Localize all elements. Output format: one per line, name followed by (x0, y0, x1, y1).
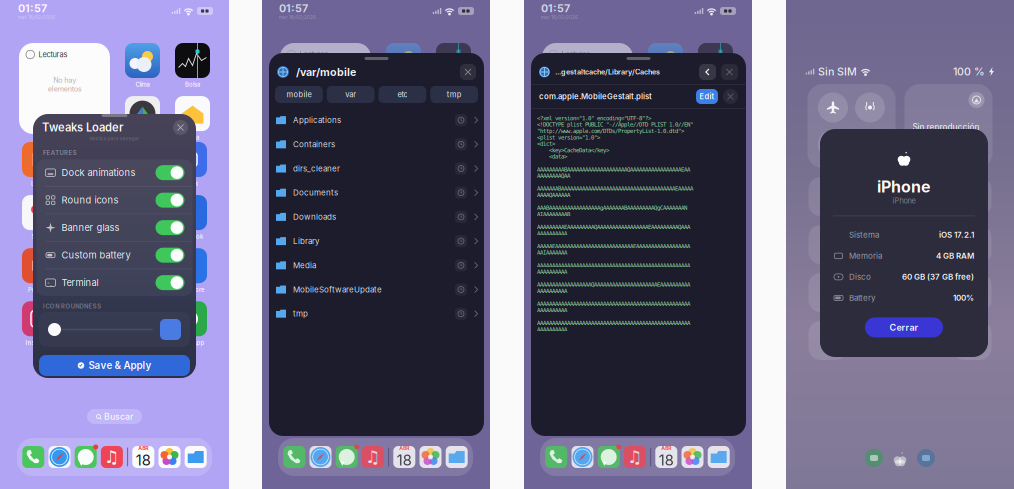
button[interactable]: Documents (269, 181, 484, 205)
button[interactable]: Toggle (818, 92, 848, 122)
button[interactable]: App (624, 446, 646, 468)
button[interactable]: App (158, 446, 180, 468)
button[interactable]: App (22, 446, 44, 468)
button[interactable]: ♥ (22, 195, 57, 240)
button[interactable]: Pruebas (22, 248, 57, 293)
button[interactable]: Custom battery (36, 242, 192, 268)
button[interactable]: App (48, 446, 70, 468)
button[interactable]: f (172, 195, 207, 240)
button[interactable]: f (433, 195, 468, 240)
button[interactable]: Atajos (172, 142, 207, 187)
button[interactable]: >_ (36, 269, 192, 296)
button[interactable]: Control (952, 225, 991, 264)
button[interactable]: Close file (723, 89, 738, 104)
button[interactable]: WhatsApp (433, 301, 468, 346)
button[interactable]: A (433, 248, 468, 293)
button[interactable]: Archivos (122, 195, 157, 240)
button[interactable]: App (101, 446, 123, 468)
button[interactable]: Clima (125, 43, 160, 88)
button[interactable]: Libros (283, 142, 318, 187)
button[interactable]: Atajos (433, 142, 468, 187)
button[interactable]: dirs_cleaner (269, 156, 484, 181)
button[interactable]: Control (952, 321, 991, 360)
button[interactable]: Close (173, 120, 188, 135)
button[interactable]: Dock animations (36, 159, 192, 186)
button[interactable]: A (333, 142, 368, 187)
button[interactable]: Bolsa (698, 43, 733, 88)
button[interactable]: Toggle (818, 129, 848, 159)
button[interactable]: Brújula (125, 96, 160, 141)
button[interactable]: Applications (269, 108, 484, 132)
button[interactable]: Archivos (645, 195, 680, 240)
button[interactable]: App (336, 446, 358, 468)
button[interactable]: Casa (175, 96, 210, 141)
button[interactable]: App (132, 446, 154, 468)
button[interactable]: Close (721, 64, 738, 80)
button[interactable]: Mensajes (122, 248, 157, 293)
button[interactable]: Brújula (648, 96, 683, 141)
button[interactable]: Close (460, 64, 476, 80)
button[interactable]: var (327, 86, 375, 103)
button[interactable]: Banner glass (36, 214, 192, 241)
button[interactable]: Instagram (22, 301, 57, 346)
button[interactable]: Round icons (36, 187, 192, 213)
button[interactable]: mobile (275, 86, 323, 103)
button[interactable]: ♥ (545, 195, 580, 240)
button[interactable]: Downloads (269, 205, 484, 229)
button[interactable]: Save & Apply (39, 355, 190, 376)
button[interactable]: Clima (386, 43, 421, 88)
button[interactable]: Casa (436, 96, 471, 141)
button[interactable]: App (419, 446, 441, 468)
button[interactable]: App (446, 446, 468, 468)
button[interactable]: Control (808, 225, 847, 264)
button[interactable]: Edit (696, 89, 718, 104)
button[interactable]: Recordat. (122, 142, 157, 187)
button[interactable]: MobileSoftwareUpdate (269, 277, 484, 302)
button[interactable]: Pruebas (283, 248, 318, 293)
button[interactable]: tmp (430, 86, 478, 103)
button[interactable]: Media (269, 253, 484, 277)
button[interactable]: App (655, 446, 677, 468)
button[interactable]: Chrome (72, 301, 107, 346)
button[interactable]: Control (808, 177, 847, 216)
button[interactable]: Instagram (283, 301, 318, 346)
button[interactable]: Ajustes (333, 195, 368, 240)
button[interactable]: Containers (269, 132, 484, 156)
button[interactable]: ♥ (283, 195, 318, 240)
button[interactable]: A (595, 142, 630, 187)
button[interactable]: Bolsa (175, 43, 210, 88)
button[interactable]: Buscar (87, 409, 142, 424)
button[interactable]: Control (952, 177, 991, 216)
button[interactable]: Chrome (595, 301, 630, 346)
button[interactable]: App (571, 446, 593, 468)
button[interactable]: Bolsa (436, 43, 471, 88)
button[interactable]: Recordat. (645, 142, 680, 187)
button[interactable]: Notas (595, 248, 630, 293)
button[interactable]: Clima (648, 43, 683, 88)
button[interactable]: Spotify (122, 301, 157, 346)
button[interactable]: App (681, 446, 703, 468)
button[interactable]: Control (808, 321, 847, 360)
button[interactable]: App (75, 446, 97, 468)
button[interactable]: tmp (269, 302, 484, 326)
button[interactable]: App (185, 446, 207, 468)
button[interactable]: A (72, 142, 107, 187)
button[interactable]: Toggle (855, 92, 885, 122)
button[interactable]: etc (378, 86, 426, 103)
button[interactable]: Spotify (645, 301, 680, 346)
button[interactable]: App (708, 446, 730, 468)
button[interactable]: Casa (698, 96, 733, 141)
button[interactable]: Cerrar (865, 317, 943, 337)
button[interactable]: Back (699, 64, 716, 80)
button[interactable]: App (545, 446, 567, 468)
